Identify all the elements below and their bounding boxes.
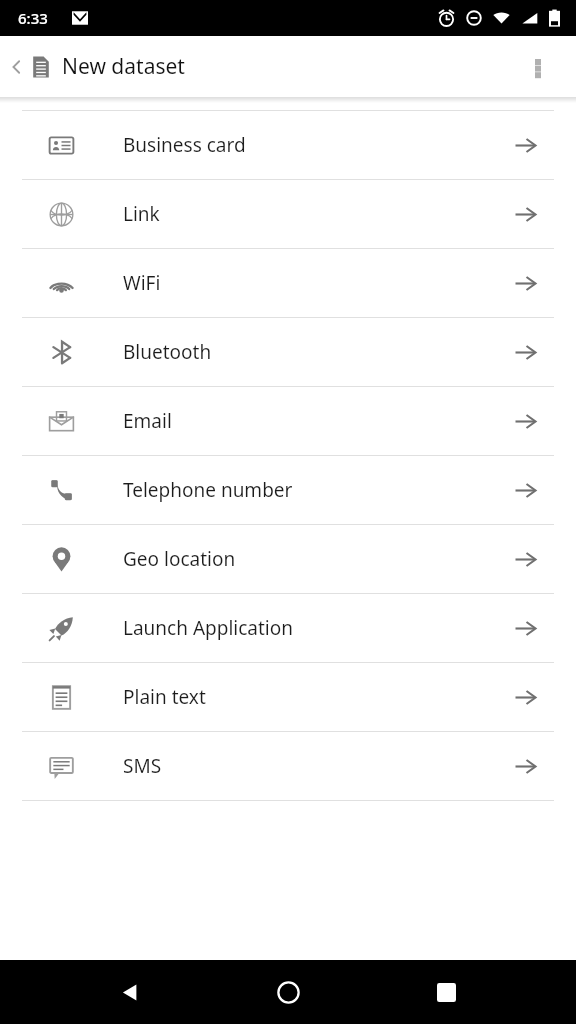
button[interactable]: Back bbox=[102, 964, 158, 1020]
button[interactable]: Recent apps bbox=[418, 964, 474, 1020]
button[interactable]: Email bbox=[0, 387, 576, 455]
staticText: Email bbox=[123, 408, 172, 434]
staticText: WiFi bbox=[123, 270, 161, 296]
button[interactable]: More options bbox=[518, 47, 558, 87]
staticText: Bluetooth bbox=[123, 339, 212, 365]
staticText: Geo location bbox=[123, 546, 236, 572]
button[interactable]: Link bbox=[0, 180, 576, 248]
button[interactable]: Business card bbox=[0, 111, 576, 179]
button[interactable]: Home bbox=[260, 964, 316, 1020]
staticText: Plain text bbox=[123, 684, 206, 710]
button[interactable]: WiFi bbox=[0, 249, 576, 317]
button[interactable]: SMS bbox=[0, 732, 576, 800]
button[interactable]: Geo location bbox=[0, 525, 576, 593]
staticText: New dataset bbox=[62, 52, 185, 81]
button[interactable]: Plain text bbox=[0, 663, 576, 731]
staticText: Launch Application bbox=[123, 615, 293, 641]
button[interactable]: Telephone number bbox=[0, 456, 576, 524]
staticText: SMS bbox=[123, 753, 162, 779]
staticText: Business card bbox=[123, 132, 246, 158]
staticText: Link bbox=[123, 201, 160, 227]
staticText: Telephone number bbox=[123, 477, 293, 503]
button[interactable]: Bluetooth bbox=[0, 318, 576, 386]
button[interactable]: Back bbox=[8, 54, 54, 80]
staticText: 6:33 bbox=[18, 8, 48, 28]
button[interactable]: Launch Application bbox=[0, 594, 576, 662]
